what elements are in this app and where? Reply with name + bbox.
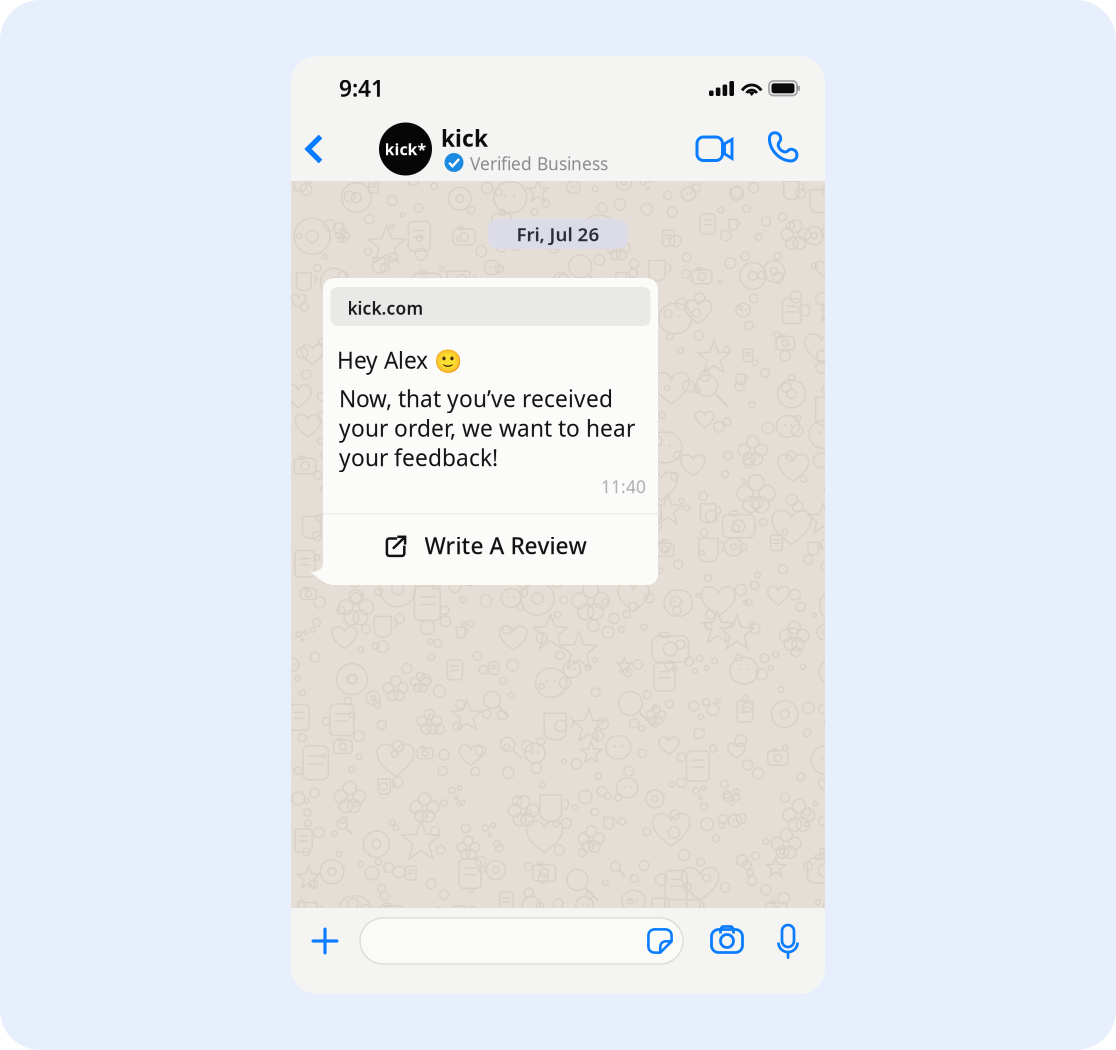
- staticText: kick.com: [347, 296, 423, 319]
- staticText: kick*: [384, 138, 426, 160]
- button[interactable]: Voice call: [762, 126, 806, 170]
- staticText: Fri, Jul 26: [516, 222, 599, 246]
- button[interactable]: Video call: [694, 126, 738, 170]
- button[interactable]: Stickers: [640, 921, 680, 961]
- staticText: kick: [441, 123, 488, 153]
- staticText: Now, that you’ve received: [339, 383, 613, 414]
- staticText: 9:41: [339, 73, 384, 103]
- staticText: 11:40: [601, 475, 646, 498]
- staticText: Write A Review: [424, 530, 586, 561]
- button[interactable]: Message: [360, 918, 683, 964]
- button[interactable]: Camera: [705, 914, 749, 958]
- staticText: Verified Business: [470, 152, 608, 175]
- button[interactable]: kick, Verified Business: [379, 118, 609, 180]
- staticText: Hey Alex 🙂: [337, 345, 462, 375]
- button[interactable]: Attach: [303, 919, 347, 963]
- button[interactable]: Voice message: [766, 914, 810, 958]
- button[interactable]: Write A Review: [323, 514, 658, 585]
- staticText: your order, we want to hear: [339, 413, 635, 443]
- staticText: your feedback!: [339, 442, 498, 473]
- button[interactable]: Back: [295, 125, 335, 173]
